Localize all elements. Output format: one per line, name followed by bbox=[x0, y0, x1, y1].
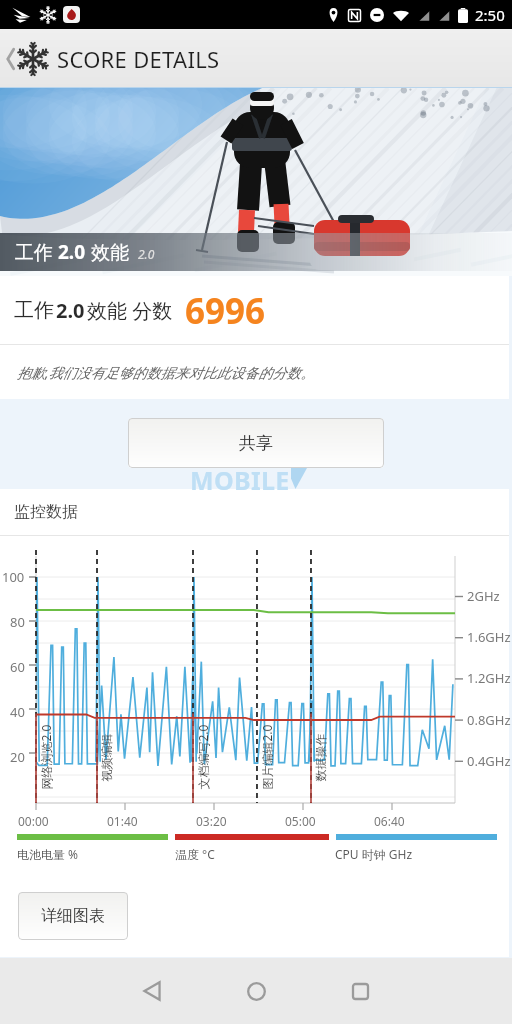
staticText: 06:40 bbox=[374, 813, 405, 829]
button[interactable]: Recents bbox=[308, 958, 412, 1024]
staticText: 0.8GHz bbox=[467, 711, 511, 729]
staticText: 网络浏览2.0 bbox=[37, 724, 53, 789]
staticText: 80 bbox=[10, 613, 25, 631]
staticText: 工作 bbox=[14, 298, 54, 323]
staticText: 效能 bbox=[86, 239, 129, 265]
staticText: 数据操作 bbox=[312, 733, 327, 781]
staticText: 文档编写2.0 bbox=[194, 724, 210, 789]
staticText: 图片编辑2.0 bbox=[258, 724, 274, 789]
staticText: SCORE DETAILS bbox=[57, 44, 220, 74]
staticText: MOBILE bbox=[190, 463, 290, 497]
staticText: 01:40 bbox=[107, 813, 138, 829]
staticText: 电池电量 % bbox=[17, 846, 79, 862]
staticText: 详细图表 bbox=[41, 906, 105, 926]
staticText: 6996 bbox=[185, 287, 266, 335]
staticText: 温度 °C bbox=[175, 846, 215, 862]
staticText: 2.0 bbox=[58, 239, 86, 265]
button[interactable]: 详细图表 bbox=[18, 892, 128, 940]
staticText: 效能 分数 bbox=[87, 297, 173, 324]
staticText: 40 bbox=[10, 703, 25, 721]
staticText: 视频编辑 bbox=[98, 733, 113, 781]
staticText: 抱歉,我们没有足够的数据来对比此设备的分数。 bbox=[17, 363, 315, 382]
staticText: 0.4GHz bbox=[467, 752, 511, 770]
staticText: CPU 时钟 GHz bbox=[335, 846, 413, 862]
button[interactable]: 共享 bbox=[128, 418, 384, 468]
staticText: 60 bbox=[10, 658, 25, 676]
staticText: 03:20 bbox=[196, 813, 227, 829]
staticText: 监控数据 bbox=[14, 502, 78, 522]
button[interactable]: Home bbox=[204, 958, 308, 1024]
button[interactable]: Back bbox=[100, 958, 204, 1024]
staticText: 2.0 bbox=[138, 246, 155, 262]
staticText: 共享 bbox=[239, 433, 273, 454]
staticText: 00:00 bbox=[18, 813, 49, 829]
staticText: 工作 bbox=[15, 239, 58, 265]
staticText: 2GHz bbox=[467, 587, 500, 605]
staticText: 05:00 bbox=[285, 813, 316, 829]
staticText: 100 bbox=[2, 568, 25, 586]
staticText: 1.6GHz bbox=[467, 628, 511, 646]
button[interactable]: Back bbox=[0, 36, 52, 82]
staticText: 2:50 bbox=[475, 5, 505, 25]
staticText: 1.2GHz bbox=[467, 669, 511, 687]
staticText: 2.0 bbox=[56, 297, 85, 324]
staticText: 20 bbox=[10, 748, 25, 766]
